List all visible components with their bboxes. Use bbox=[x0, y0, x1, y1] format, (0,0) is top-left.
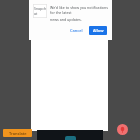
staticText: Allow bbox=[93, 28, 104, 33]
staticText: Snapchat bbox=[34, 6, 47, 16]
staticText: Cancel bbox=[70, 28, 83, 33]
staticText: news and updates. bbox=[50, 17, 82, 22]
button[interactable]: Allow bbox=[89, 26, 107, 35]
button[interactable]: Translate bbox=[3, 129, 32, 137]
button[interactable]: Recording indicator bbox=[117, 124, 128, 135]
staticText: Translate bbox=[9, 131, 27, 136]
staticText: We'd like to show you notifications for … bbox=[50, 5, 108, 15]
button[interactable]: Cancel bbox=[67, 26, 86, 35]
